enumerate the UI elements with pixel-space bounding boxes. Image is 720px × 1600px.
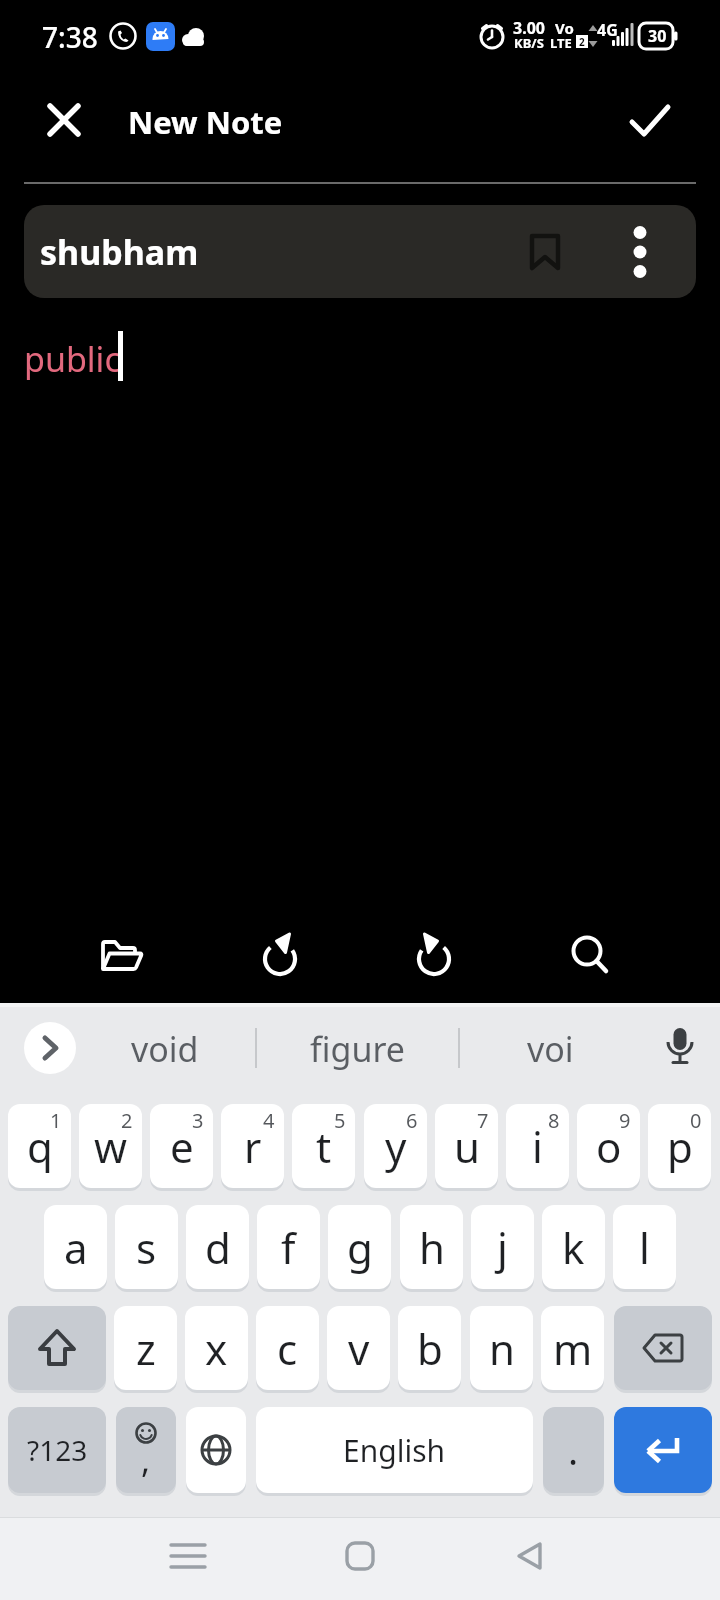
staticText: public xyxy=(24,336,121,382)
button[interactable]: k xyxy=(542,1205,605,1289)
button[interactable] xyxy=(86,920,158,992)
staticText: g xyxy=(347,1219,373,1276)
staticText: LTE xyxy=(550,34,572,50)
button[interactable] xyxy=(40,96,88,144)
button[interactable] xyxy=(614,1407,712,1493)
staticText: b xyxy=(417,1320,443,1377)
button[interactable] xyxy=(398,920,470,992)
button[interactable]: t xyxy=(292,1104,355,1188)
staticText: void xyxy=(131,1026,199,1070)
button[interactable] xyxy=(494,1520,566,1592)
staticText: p xyxy=(667,1118,693,1175)
staticText: figure xyxy=(310,1026,405,1070)
staticText: r xyxy=(244,1118,262,1175)
button[interactable]: . xyxy=(543,1407,604,1493)
staticText: w xyxy=(94,1118,128,1175)
staticText: English xyxy=(343,1430,446,1471)
button[interactable]: v xyxy=(327,1306,390,1390)
button[interactable]: z xyxy=(114,1306,177,1390)
staticText: Vo xyxy=(555,18,574,38)
button[interactable]: r xyxy=(221,1104,284,1188)
button[interactable]: x xyxy=(185,1306,248,1390)
button[interactable]: g xyxy=(328,1205,391,1289)
staticText: 2 xyxy=(579,35,585,48)
button[interactable]: b xyxy=(398,1306,461,1390)
button[interactable]: English xyxy=(256,1407,533,1493)
staticText: i xyxy=(532,1118,543,1175)
staticText: 7:38 xyxy=(42,18,98,54)
button[interactable]: o xyxy=(577,1104,640,1188)
button[interactable]: q xyxy=(8,1104,71,1188)
staticText: 3 xyxy=(192,1107,204,1134)
staticText: 6 xyxy=(406,1107,418,1134)
staticText: New Note xyxy=(128,101,283,143)
staticText: 1 xyxy=(50,1107,62,1134)
staticText: s xyxy=(136,1219,157,1276)
staticText: y xyxy=(385,1118,407,1175)
button[interactable]: l xyxy=(613,1205,676,1289)
button[interactable]: i xyxy=(506,1104,569,1188)
button[interactable]: p xyxy=(648,1104,711,1188)
staticText: 30 xyxy=(648,25,667,47)
button[interactable]: e xyxy=(150,1104,213,1188)
button[interactable]: u xyxy=(435,1104,498,1188)
staticText: m xyxy=(553,1320,593,1377)
button[interactable]: j xyxy=(471,1205,534,1289)
button[interactable]: w xyxy=(79,1104,142,1188)
button[interactable]: shubham xyxy=(24,205,696,298)
button[interactable] xyxy=(324,1520,396,1592)
staticText: , xyxy=(141,1437,151,1483)
button[interactable]: s xyxy=(115,1205,178,1289)
staticText: d xyxy=(205,1219,231,1276)
staticText: l xyxy=(639,1219,650,1276)
staticText: t xyxy=(316,1118,332,1175)
staticText: KB/S xyxy=(514,34,544,50)
button[interactable] xyxy=(152,1520,224,1592)
button[interactable]: m xyxy=(541,1306,604,1390)
button[interactable] xyxy=(186,1407,246,1493)
staticText: z xyxy=(136,1320,156,1377)
staticText: ?123 xyxy=(27,1431,88,1469)
staticText: u xyxy=(454,1118,480,1175)
staticText: 4G xyxy=(597,19,618,41)
staticText: 9 xyxy=(619,1107,631,1134)
button[interactable]: a xyxy=(44,1205,107,1289)
staticText: 5 xyxy=(334,1107,346,1134)
staticText: c xyxy=(277,1320,298,1377)
button[interactable] xyxy=(614,1306,712,1390)
staticText: q xyxy=(27,1118,53,1175)
staticText: 4 xyxy=(263,1107,275,1134)
staticText: f xyxy=(281,1219,296,1276)
staticText: e xyxy=(170,1118,194,1175)
staticText: 2 xyxy=(121,1107,133,1134)
staticText: shubham xyxy=(40,229,199,275)
button[interactable]: f xyxy=(257,1205,320,1289)
staticText: x xyxy=(205,1320,228,1377)
staticText: v xyxy=(348,1320,370,1377)
button[interactable] xyxy=(24,1022,76,1074)
button[interactable] xyxy=(626,96,674,144)
button[interactable]: h xyxy=(400,1205,463,1289)
staticText: 0 xyxy=(690,1107,702,1134)
button[interactable]: ?123 xyxy=(8,1407,106,1493)
staticText: k xyxy=(562,1219,585,1276)
staticText: o xyxy=(596,1118,622,1175)
staticText: h xyxy=(419,1219,445,1276)
staticText: j xyxy=(497,1219,508,1276)
button[interactable] xyxy=(8,1306,106,1390)
button[interactable]: y xyxy=(364,1104,427,1188)
button[interactable] xyxy=(244,920,316,992)
button[interactable] xyxy=(554,920,626,992)
staticText: a xyxy=(64,1219,88,1276)
button[interactable]: c xyxy=(256,1306,319,1390)
button[interactable]: , xyxy=(116,1407,176,1493)
staticText: 7 xyxy=(477,1107,489,1134)
button[interactable]: n xyxy=(470,1306,533,1390)
button[interactable]: d xyxy=(186,1205,249,1289)
staticText: 3.00 xyxy=(513,17,545,39)
staticText: voi xyxy=(527,1026,574,1070)
staticText: . xyxy=(568,1424,579,1476)
staticText: 8 xyxy=(548,1107,560,1134)
staticText: n xyxy=(489,1320,515,1377)
